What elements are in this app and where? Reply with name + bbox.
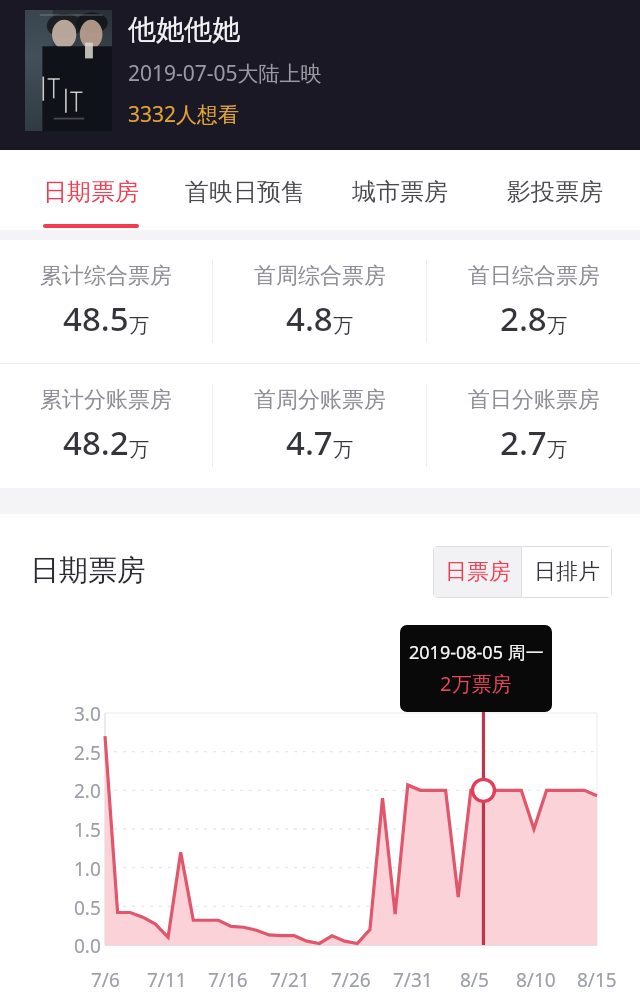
staticText: 日期票房 — [30, 552, 146, 589]
staticText: 万 — [547, 437, 567, 462]
button[interactable]: 3332人想看 — [128, 100, 240, 129]
staticText: 8/5 — [460, 967, 489, 993]
staticText: 8/10 — [516, 967, 556, 993]
staticText: 3332人想看 — [128, 100, 240, 129]
staticText: 4.7 — [286, 420, 333, 465]
staticText: 2.8 — [500, 296, 547, 341]
staticText: 万 — [333, 437, 353, 462]
staticText: 7/31 — [393, 967, 433, 993]
staticText: 首映日预售 — [185, 177, 305, 207]
button[interactable]: 影投票房 — [477, 150, 632, 230]
staticText: 7/11 — [147, 967, 187, 993]
staticText: 7/6 — [91, 967, 120, 993]
staticText: 首日分账票房 — [468, 386, 600, 414]
staticText: 日期票房 — [43, 177, 139, 207]
staticText: 日排片 — [534, 558, 600, 586]
staticText: 首日综合票房 — [468, 262, 600, 290]
staticText: 4.8 — [286, 296, 333, 341]
staticText: 累计综合票房 — [40, 262, 172, 290]
staticText: 城市票房 — [352, 177, 448, 207]
button[interactable]: 日期票房 — [14, 150, 168, 230]
staticText: 0.0 — [74, 933, 101, 959]
staticText: 万 — [333, 313, 353, 338]
staticText: 万 — [129, 437, 149, 462]
staticText: 2019-08-05 周一 — [409, 640, 544, 665]
button[interactable]: 首映日预售 — [168, 150, 322, 230]
button[interactable]: 首日综合票房 — [427, 240, 640, 363]
staticText: 万 — [547, 313, 567, 338]
button[interactable]: Movie poster — [25, 10, 112, 131]
staticText: 他她他她 — [128, 12, 240, 47]
button[interactable]: 城市票房 — [322, 150, 477, 230]
staticText: 2.0 — [74, 778, 101, 804]
button[interactable]: 2019-08-05 周一 — [400, 625, 552, 712]
button[interactable]: 累计综合票房 — [0, 240, 212, 363]
staticText: 8/15 — [577, 967, 617, 993]
staticText: 3.0 — [74, 701, 101, 727]
button[interactable]: 日票房 — [434, 547, 521, 597]
staticText: 万 — [129, 313, 149, 338]
button[interactable]: 首周综合票房 — [213, 240, 426, 363]
staticText: 7/21 — [270, 967, 310, 993]
staticText: 2019-07-05大陆上映 — [128, 59, 322, 88]
staticText: 7/16 — [208, 967, 248, 993]
staticText: 1.0 — [74, 856, 101, 882]
button[interactable]: 累计分账票房 — [0, 364, 212, 487]
staticText: 48.5 — [63, 296, 129, 341]
button[interactable]: 首日分账票房 — [427, 364, 640, 487]
button[interactable]: 首周分账票房 — [213, 364, 426, 487]
staticText: 累计分账票房 — [40, 386, 172, 414]
staticText: 2.5 — [74, 740, 101, 766]
staticText: 首周综合票房 — [254, 262, 386, 290]
staticText: 首周分账票房 — [254, 386, 386, 414]
staticText: 影投票房 — [507, 177, 603, 207]
button[interactable]: 日排片 — [522, 547, 611, 597]
staticText: 7/26 — [331, 967, 371, 993]
staticText: 0.5 — [74, 895, 101, 921]
staticText: 1.5 — [74, 817, 101, 843]
staticText: 日票房 — [445, 558, 511, 586]
staticText: 2万票房 — [440, 670, 512, 697]
staticText: 2.7 — [500, 420, 547, 465]
staticText: 48.2 — [63, 420, 129, 465]
